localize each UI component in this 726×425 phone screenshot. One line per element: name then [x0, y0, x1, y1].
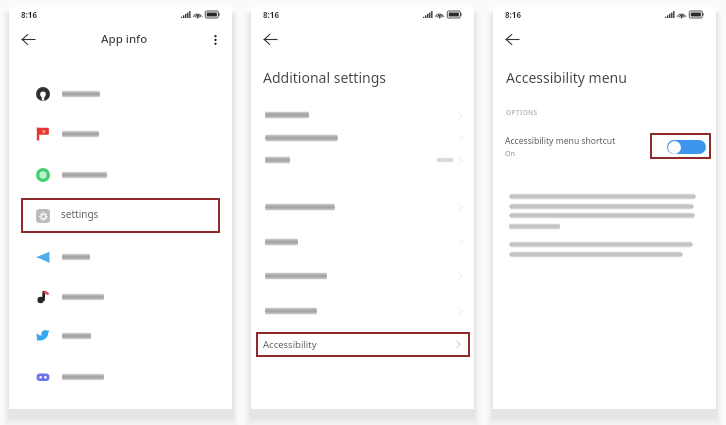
button[interactable]	[9, 241, 232, 273]
staticText: Accessibility menu	[506, 68, 627, 87]
button[interactable]: Accessibility menu shortcut toggle	[667, 140, 706, 154]
button[interactable]: Back	[502, 29, 523, 50]
staticText: Accessibility	[263, 338, 317, 351]
button[interactable]	[9, 320, 232, 352]
button[interactable]	[251, 127, 474, 149]
staticText: 8:16	[21, 9, 37, 20]
button[interactable]: Accessibility	[256, 332, 470, 357]
button[interactable]	[251, 149, 474, 171]
staticText: Accessibility menu shortcut	[505, 135, 616, 147]
button[interactable]	[251, 231, 474, 253]
button[interactable]: More options	[205, 29, 226, 50]
staticText: 8:16	[263, 9, 279, 20]
staticText: settings	[61, 207, 99, 221]
staticText: OPTIONS	[506, 108, 538, 117]
button[interactable]	[251, 196, 474, 218]
staticText: On	[505, 149, 515, 159]
staticText: Additional settings	[263, 68, 386, 87]
button[interactable]: Back	[18, 29, 39, 50]
staticText: App info	[101, 31, 148, 47]
button[interactable]	[251, 265, 474, 287]
button[interactable]	[9, 159, 232, 191]
button[interactable]: Back	[260, 29, 281, 50]
staticText: 8:16	[505, 9, 521, 20]
button[interactable]	[9, 78, 232, 110]
button[interactable]	[9, 281, 232, 313]
button[interactable]: settings	[21, 198, 220, 233]
button[interactable]	[9, 118, 232, 150]
button[interactable]: Accessibility menu shortcut	[493, 130, 716, 164]
button[interactable]	[9, 361, 232, 393]
button[interactable]	[251, 104, 474, 126]
button[interactable]	[251, 300, 474, 322]
